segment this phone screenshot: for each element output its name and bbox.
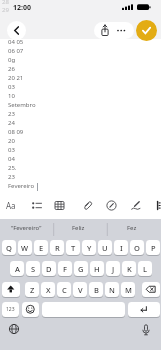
staticText: 26 <box>8 65 15 73</box>
staticText: H <box>94 264 100 274</box>
button[interactable] <box>2 282 20 297</box>
staticText: I <box>120 243 123 253</box>
staticText: W <box>21 243 29 253</box>
staticText: 23 <box>8 173 15 181</box>
staticText: 10 <box>8 92 15 100</box>
staticText: Fez <box>127 224 137 232</box>
staticText: A <box>15 264 20 274</box>
button[interactable]: J <box>106 261 120 276</box>
staticText: R <box>55 243 60 253</box>
button[interactable]: B <box>89 282 103 297</box>
button[interactable]: I <box>114 240 128 255</box>
staticText: N <box>109 285 115 295</box>
staticText: M <box>125 285 132 295</box>
button[interactable]: H <box>90 261 104 276</box>
staticText: L <box>143 264 148 274</box>
button[interactable]: M <box>121 282 135 297</box>
staticText: 03 <box>8 83 15 91</box>
staticText: 28 <box>2 0 9 6</box>
button[interactable] <box>22 302 39 317</box>
button[interactable]: A <box>10 261 24 276</box>
button[interactable] <box>7 322 21 336</box>
staticText: Feliz <box>72 224 85 232</box>
staticText: C <box>62 285 67 295</box>
button[interactable]: O <box>130 240 144 255</box>
button[interactable]: X <box>41 282 55 297</box>
staticText: K <box>127 264 132 274</box>
staticText: 04 05 <box>8 38 24 46</box>
button[interactable]: 123 <box>2 302 19 317</box>
button[interactable]: Z <box>25 282 39 297</box>
staticText: 25. <box>8 164 17 172</box>
button[interactable]: W <box>18 240 32 255</box>
staticText: 04 <box>8 155 15 163</box>
button[interactable] <box>128 302 160 317</box>
button[interactable]: U <box>98 240 112 255</box>
staticText: S <box>31 264 36 274</box>
staticText: G <box>78 264 84 274</box>
button[interactable]: V <box>73 282 87 297</box>
staticText: X <box>46 285 51 295</box>
staticText: Y <box>87 243 92 253</box>
staticText: 20 <box>8 137 15 145</box>
staticText: 23 <box>8 110 15 118</box>
staticText: Z <box>30 285 35 295</box>
staticText: B <box>94 285 99 295</box>
button[interactable] <box>136 20 157 41</box>
button[interactable]: K <box>122 261 136 276</box>
staticText: Aa <box>6 200 16 211</box>
staticText: 29 <box>2 6 9 14</box>
staticText: 0g <box>8 56 16 64</box>
button[interactable]: D <box>42 261 56 276</box>
staticText: 06 07 <box>8 47 24 55</box>
button[interactable] <box>142 282 160 297</box>
button[interactable] <box>0 219 54 240</box>
button[interactable]: S <box>26 261 40 276</box>
staticText: 123 <box>6 306 15 313</box>
button[interactable]: G <box>74 261 88 276</box>
button[interactable]: P <box>146 240 160 255</box>
staticText: 24 <box>8 119 15 127</box>
button[interactable]: L <box>138 261 152 276</box>
staticText: U <box>102 243 108 253</box>
button[interactable]: E <box>34 240 48 255</box>
button[interactable] <box>42 302 125 317</box>
button[interactable]: T <box>66 240 80 255</box>
staticText: P <box>151 243 156 253</box>
staticText: Q <box>6 243 12 253</box>
button[interactable] <box>139 323 153 337</box>
staticText: “Fevereiro” <box>11 224 42 232</box>
button[interactable]: F <box>58 261 72 276</box>
staticText: O <box>134 243 140 253</box>
staticText: D <box>46 264 52 274</box>
staticText: 03 <box>8 146 15 154</box>
staticText: V <box>78 285 83 295</box>
staticText: Setembro <box>8 101 36 109</box>
button[interactable]: C <box>57 282 71 297</box>
staticText: 08 09 <box>8 128 24 136</box>
staticText: E <box>39 243 44 253</box>
button[interactable] <box>7 21 26 40</box>
button[interactable]: Y <box>82 240 96 255</box>
staticText: F <box>63 264 67 274</box>
staticText: Fevereiro <box>8 182 35 190</box>
button[interactable]: R <box>50 240 64 255</box>
staticText: 20 21 <box>8 74 24 82</box>
button[interactable] <box>94 22 134 39</box>
button[interactable]: N <box>105 282 119 297</box>
button[interactable]: Q <box>2 240 16 255</box>
staticText: J <box>112 264 115 274</box>
staticText: 12:00 <box>13 3 31 13</box>
staticText: T <box>71 243 76 253</box>
